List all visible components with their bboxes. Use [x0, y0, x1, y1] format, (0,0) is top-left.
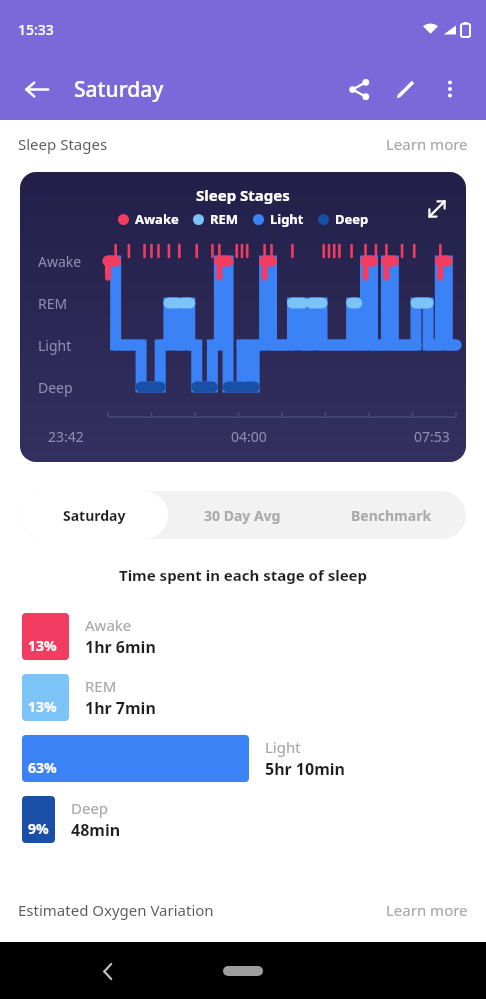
- staticText: Awake: [38, 252, 82, 271]
- staticText: Light: [270, 210, 304, 228]
- staticText: 1hr 6min: [85, 636, 156, 658]
- staticText: Estimated Oxygen Variation: [18, 900, 214, 920]
- staticText: Deep: [38, 378, 73, 397]
- staticText: 13%: [28, 697, 57, 716]
- button[interactable]: 13%: [0, 674, 486, 721]
- staticText: Light: [38, 336, 72, 355]
- staticText: Awake: [135, 210, 179, 228]
- staticText: 13%: [28, 636, 57, 655]
- staticText: Saturday: [74, 75, 164, 104]
- button[interactable]: Home: [223, 966, 263, 976]
- staticText: Sleep Stages: [18, 134, 108, 154]
- staticText: 04:00: [231, 427, 267, 446]
- staticText: Light: [265, 737, 301, 757]
- staticText: 23:42: [48, 427, 84, 446]
- button[interactable]: 13%: [0, 613, 486, 660]
- staticText: 07:53: [414, 427, 450, 446]
- button[interactable]: More options: [428, 67, 472, 111]
- button[interactable]: Share: [336, 66, 382, 112]
- button[interactable]: Benchmark: [317, 491, 466, 539]
- button[interactable]: Back: [14, 67, 58, 111]
- staticText: 15:33: [18, 20, 54, 39]
- button[interactable]: 63%: [0, 735, 486, 782]
- staticText: Saturday: [63, 506, 126, 525]
- staticText: Deep: [335, 210, 369, 228]
- staticText: REM: [38, 294, 68, 313]
- staticText: 9%: [28, 819, 49, 838]
- button[interactable]: 9%: [0, 796, 486, 843]
- staticText: 1hr 7min: [85, 697, 156, 719]
- button[interactable]: Estimated Oxygen Variation: [0, 896, 486, 924]
- button[interactable]: Edit: [382, 66, 428, 112]
- button[interactable]: Back: [90, 953, 126, 989]
- staticText: REM: [210, 210, 239, 228]
- staticText: 48min: [71, 819, 121, 841]
- staticText: REM: [85, 676, 117, 696]
- button[interactable]: Sleep Stages: [20, 172, 466, 462]
- button[interactable]: Sleep Stages: [0, 130, 486, 158]
- button[interactable]: 30 Day Avg: [168, 491, 317, 539]
- staticText: Deep: [71, 798, 109, 818]
- staticText: 30 Day Avg: [204, 506, 281, 525]
- staticText: Learn more: [386, 134, 468, 154]
- staticText: Awake: [85, 615, 132, 635]
- staticText: 5hr 10min: [265, 758, 345, 780]
- staticText: 63%: [28, 758, 57, 777]
- staticText: Sleep Stages: [196, 185, 290, 205]
- button[interactable]: Expand chart: [420, 192, 454, 226]
- button[interactable]: Saturday: [20, 491, 168, 539]
- staticText: Time spent in each stage of sleep: [0, 565, 486, 585]
- staticText: Benchmark: [351, 506, 432, 525]
- staticText: Learn more: [386, 900, 468, 920]
